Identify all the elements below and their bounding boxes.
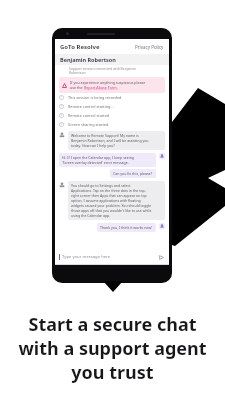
staticText: Welcome to Remote Support! My name is Be… bbox=[71, 133, 149, 148]
staticText: Start a secure chat with a support agent… bbox=[18, 312, 207, 384]
staticText: Report Abuse Form. bbox=[84, 85, 118, 90]
staticText: You should go to Settings and select App… bbox=[71, 183, 152, 218]
staticText: Can you fix this, please? bbox=[113, 171, 153, 176]
staticText: use the bbox=[70, 85, 84, 90]
button[interactable]: Report Abuse Form. bbox=[84, 85, 118, 90]
staticText: Remote control starting ... bbox=[68, 104, 115, 109]
button[interactable]: Send bbox=[158, 254, 165, 261]
staticText: Type your message here bbox=[62, 254, 111, 260]
button[interactable]: Type your message here bbox=[59, 250, 165, 264]
staticText: Remote control started bbox=[68, 113, 110, 118]
staticText: Screen sharing started. bbox=[68, 122, 110, 127]
staticText: This session is being recorded bbox=[68, 95, 122, 100]
staticText: Hi. If I open the Calendar app, I keep s… bbox=[62, 155, 134, 165]
staticText: Thank you, I think it works now! bbox=[100, 225, 153, 230]
staticText: Support session connected with Benjamin … bbox=[69, 66, 136, 75]
staticText: GoTo Resolve bbox=[60, 43, 100, 51]
staticText: Privacy Policy bbox=[135, 44, 164, 50]
staticText: If you experience anything suspicious pl… bbox=[70, 80, 146, 85]
staticText: Benjamin Robertson bbox=[60, 56, 116, 63]
button[interactable]: Privacy Policy bbox=[135, 44, 164, 50]
